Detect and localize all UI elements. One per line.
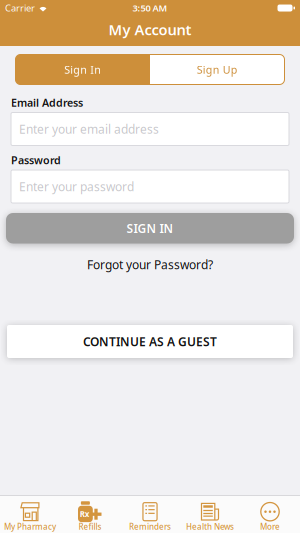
button[interactable]: Rx [60, 496, 120, 533]
button[interactable]: More [240, 496, 300, 533]
staticText: Forgot your Password? [87, 256, 213, 272]
staticText: 3:50 AM [132, 2, 167, 14]
staticText: Carrier [5, 2, 35, 14]
staticText: Rx [80, 509, 90, 519]
staticText: SIGN IN [126, 220, 173, 236]
staticText: Sign Up [197, 62, 238, 77]
staticText: My Pharmacy [4, 521, 56, 532]
staticText: Sign In [64, 62, 101, 77]
staticText: Enter your password [19, 178, 134, 194]
button[interactable]: Health News [180, 496, 240, 533]
staticText: Reminders [129, 521, 171, 532]
staticText: CONTINUE AS A GUEST [83, 333, 217, 349]
button[interactable]: Sign In [15, 54, 150, 84]
staticText: My Account [108, 20, 191, 39]
staticText: Password [11, 153, 61, 167]
staticText: Email Address [11, 95, 83, 110]
button[interactable]: My Pharmacy [0, 496, 60, 533]
staticText: More [260, 521, 280, 532]
button[interactable]: Forgot your Password? [87, 257, 213, 271]
staticText: Refills [78, 521, 101, 532]
button[interactable]: Reminders [120, 496, 180, 533]
button[interactable]: Sign Up [150, 54, 284, 84]
staticText: Health News [186, 521, 234, 532]
button[interactable]: SIGN IN [6, 213, 294, 243]
button[interactable]: CONTINUE AS A GUEST [7, 325, 293, 358]
staticText: Enter your email address [19, 121, 159, 137]
